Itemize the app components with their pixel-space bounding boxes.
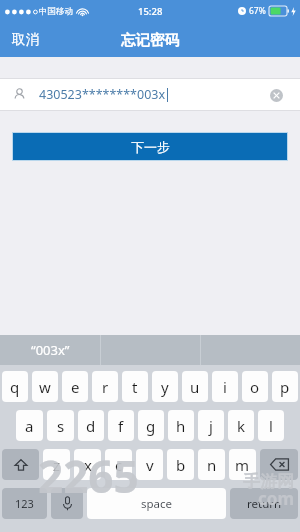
staticText: 123 <box>15 496 34 511</box>
staticText: y <box>161 377 169 397</box>
button[interactable]: f <box>108 410 134 441</box>
staticText: 67% <box>249 5 266 17</box>
staticText: c <box>115 455 123 475</box>
staticText: j <box>209 416 213 436</box>
button[interactable]: e <box>62 371 88 402</box>
button[interactable]: q <box>2 371 28 402</box>
button[interactable]: j <box>198 410 224 441</box>
button[interactable]: i <box>212 371 238 402</box>
staticText: s <box>57 416 65 436</box>
staticText: 下一步 <box>131 139 170 155</box>
button[interactable]: Backspace <box>260 449 298 480</box>
staticText: 2265 <box>38 446 139 506</box>
button[interactable]: u <box>182 371 208 402</box>
staticText: x <box>84 455 92 475</box>
staticText: o <box>250 377 260 397</box>
staticText: z <box>53 455 61 475</box>
button[interactable]: h <box>168 410 194 441</box>
button[interactable]: k <box>228 410 254 441</box>
staticText: a <box>25 416 34 436</box>
button[interactable]: space <box>87 488 226 519</box>
button[interactable]: g <box>138 410 164 441</box>
staticText: h <box>176 416 186 436</box>
button[interactable]: a <box>16 410 43 441</box>
button[interactable]: x <box>74 449 101 480</box>
button[interactable]: p <box>272 371 298 402</box>
staticText: 取消 <box>12 31 39 48</box>
button[interactable]: n <box>198 449 225 480</box>
staticText: e <box>71 377 80 397</box>
staticText: “003x” <box>31 341 70 359</box>
staticText: q <box>10 377 20 397</box>
button[interactable]: r <box>92 371 118 402</box>
button[interactable]: o <box>242 371 268 402</box>
staticText: return <box>247 496 282 512</box>
button[interactable]: 取消 <box>0 22 51 57</box>
button[interactable]: b <box>167 449 194 480</box>
button[interactable]: Clear text <box>266 85 286 105</box>
staticText: k <box>237 416 246 436</box>
button[interactable]: Voice input <box>51 488 83 519</box>
button[interactable]: z <box>43 449 70 480</box>
staticText: d <box>86 416 96 436</box>
staticText: 430523********003x <box>39 86 166 103</box>
button[interactable]: d <box>78 410 104 441</box>
button[interactable]: Shift <box>2 449 39 480</box>
staticText: 手游网 <box>243 471 294 492</box>
staticText: w <box>39 377 51 397</box>
staticText: com <box>258 487 294 510</box>
button[interactable]: m <box>229 449 256 480</box>
staticText: i <box>223 377 227 397</box>
button[interactable]: y <box>152 371 178 402</box>
staticText: p <box>280 377 290 397</box>
staticText: t <box>132 377 138 397</box>
staticText: 中国移动 <box>39 6 73 17</box>
staticText: 忘记密码 <box>121 31 179 49</box>
staticText: r <box>102 377 109 397</box>
button[interactable]: return <box>230 488 298 519</box>
button[interactable]: 430523********003x <box>0 79 300 110</box>
staticText: 15:28 <box>138 5 163 18</box>
button[interactable]: 下一步 <box>13 133 287 160</box>
staticText: f <box>118 416 124 436</box>
button[interactable]: t <box>122 371 148 402</box>
staticText: l <box>269 416 273 436</box>
button[interactable]: v <box>136 449 163 480</box>
staticText: v <box>146 455 154 475</box>
staticText: u <box>190 377 200 397</box>
button[interactable]: “003x” <box>0 335 100 365</box>
button[interactable]: s <box>47 410 74 441</box>
button[interactable]: l <box>258 410 284 441</box>
staticText: b <box>176 455 186 475</box>
staticText: space <box>141 496 173 512</box>
staticText: n <box>207 455 217 475</box>
button[interactable]: w <box>32 371 58 402</box>
button[interactable]: 123 <box>2 488 47 519</box>
staticText: m <box>235 455 250 475</box>
staticText: g <box>146 416 156 436</box>
button[interactable]: c <box>105 449 132 480</box>
